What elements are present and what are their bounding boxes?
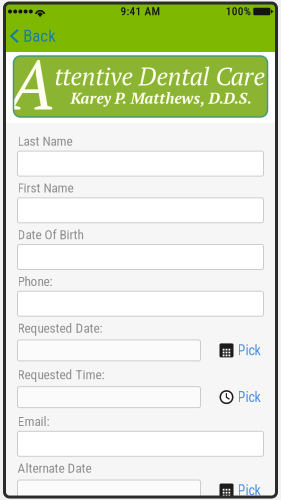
staticText: Last Name (17, 133, 72, 149)
button[interactable]: Back (4, 20, 76, 52)
staticText: 9:41 AM (120, 5, 160, 18)
staticText: Back (23, 26, 56, 46)
staticText: Pick (237, 482, 260, 499)
staticText: ttentive Dental Care (54, 59, 264, 93)
button[interactable]: Pick (216, 478, 263, 500)
button[interactable]: Pick (216, 385, 263, 410)
staticText: 100% (226, 5, 251, 18)
staticText: Pick (237, 389, 260, 405)
button[interactable]: Pick (216, 338, 263, 363)
staticText: Email: (17, 414, 49, 429)
staticText: Date Of Birth (17, 227, 83, 242)
staticText: Phone: (17, 274, 52, 289)
staticText: Karey P. Matthews, D.D.S. (70, 88, 251, 108)
staticText: Requested Date: (17, 320, 102, 336)
staticText: Alternate Date (17, 460, 91, 476)
staticText: Pick (237, 342, 260, 359)
staticText: First Name (17, 180, 73, 196)
staticText: Requested Time: (17, 367, 104, 383)
staticText: A (8, 38, 69, 130)
